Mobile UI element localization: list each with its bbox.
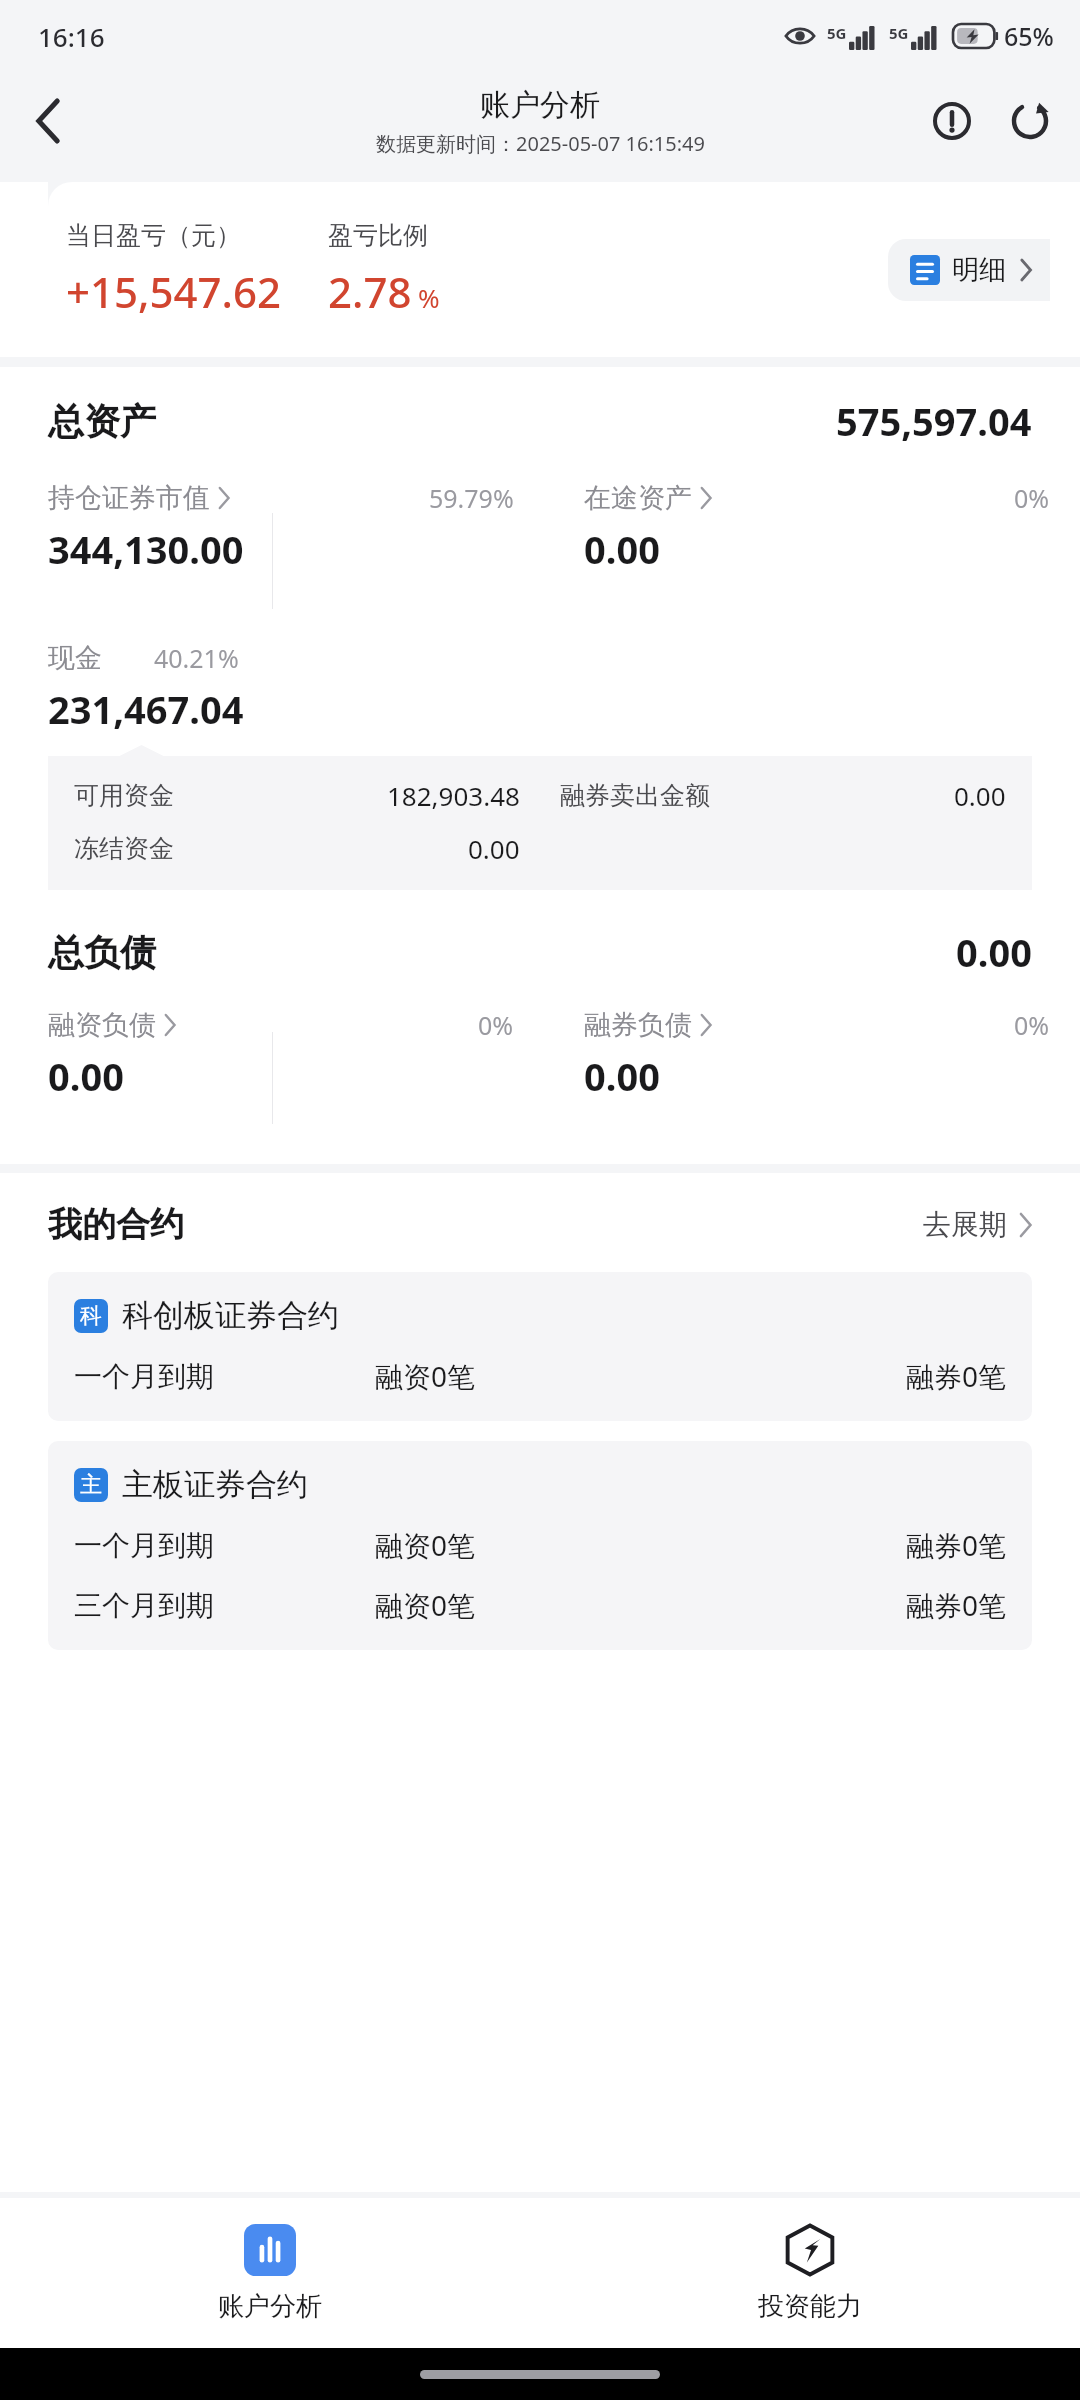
button[interactable]: 明细 <box>888 239 1050 301</box>
staticText: 账户分析 <box>480 86 600 124</box>
staticText: 数据更新时间：2025-05-07 16:15:49 <box>376 130 705 157</box>
staticText: 0.00 <box>48 1050 124 1102</box>
button[interactable]: 持仓证券市值 <box>48 481 514 575</box>
staticText: 0.00 <box>468 831 520 866</box>
button[interactable]: 投资能力 <box>540 2198 1080 2348</box>
staticText: 0% <box>1014 1008 1050 1042</box>
staticText: 科 <box>80 1302 102 1330</box>
staticText: 0% <box>478 1008 514 1042</box>
staticText: 融券0笔 <box>719 1357 1006 1395</box>
staticText: 231,467.04 <box>48 683 244 735</box>
staticText: 融券卖出金额 <box>560 780 710 811</box>
staticText: 0.00 <box>954 778 1006 813</box>
staticText: 总资产 <box>48 399 156 444</box>
staticText: 我的合约 <box>48 1203 184 1246</box>
staticText: 现金 <box>48 641 102 675</box>
staticText: 59.79% <box>429 481 514 515</box>
staticText: 可用资金 <box>74 780 174 811</box>
button[interactable]: Refresh <box>998 89 1062 153</box>
staticText: 去展期 <box>923 1207 1007 1242</box>
staticText: 5G <box>889 23 909 43</box>
staticText: 账户分析 <box>218 2290 322 2323</box>
staticText: 主 <box>80 1471 102 1499</box>
staticText: % <box>418 280 440 315</box>
button[interactable]: 在途资产 <box>584 481 1050 575</box>
staticText: 融券0笔 <box>719 1526 1006 1564</box>
staticText: 0.00 <box>584 523 660 575</box>
staticText: 一个月到期 <box>74 1359 375 1394</box>
staticText: 投资能力 <box>758 2290 862 2323</box>
button[interactable]: Back <box>12 85 84 157</box>
staticText: 一个月到期 <box>74 1528 375 1563</box>
staticText: 5G <box>827 23 847 43</box>
staticText: 65% <box>1004 19 1054 53</box>
staticText: +15,547.62 <box>66 263 282 320</box>
button[interactable]: 主 <box>48 1441 1032 1650</box>
staticText: 融资0笔 <box>375 1586 719 1624</box>
staticText: 总负债 <box>48 930 156 975</box>
staticText: 575,597.04 <box>836 395 1032 447</box>
staticText: 0.00 <box>956 926 1032 978</box>
staticText: 0.00 <box>584 1050 660 1102</box>
staticText: 40.21% <box>154 641 239 675</box>
button[interactable]: Info <box>920 89 984 153</box>
button[interactable]: 融资负债 <box>48 1008 514 1102</box>
button[interactable]: 科 <box>48 1272 1032 1421</box>
staticText: 0% <box>1014 481 1050 515</box>
staticText: 344,130.00 <box>48 523 244 575</box>
button[interactable]: 账户分析 <box>0 2198 540 2348</box>
staticText: 16:16 <box>38 19 105 54</box>
staticText: 融资0笔 <box>375 1357 719 1395</box>
staticText: 科创板证券合约 <box>122 1296 339 1335</box>
staticText: 在途资产 <box>584 481 692 515</box>
button[interactable]: 去展期 <box>923 1207 1032 1242</box>
staticText: 盈亏比例 <box>328 220 428 251</box>
staticText: 融资负债 <box>48 1008 156 1042</box>
staticText: 2.78 <box>328 263 412 320</box>
staticText: 182,903.48 <box>387 778 520 813</box>
staticText: 当日盈亏（元） <box>66 220 241 251</box>
staticText: 三个月到期 <box>74 1588 375 1623</box>
staticText: 融券负债 <box>584 1008 692 1042</box>
staticText: 融资0笔 <box>375 1526 719 1564</box>
staticText: 冻结资金 <box>74 833 174 864</box>
staticText: 明细 <box>952 253 1006 287</box>
staticText: 融券0笔 <box>719 1586 1006 1624</box>
staticText: 主板证券合约 <box>122 1465 308 1504</box>
staticText: 持仓证券市值 <box>48 481 210 515</box>
button[interactable]: 融券负债 <box>584 1008 1050 1102</box>
